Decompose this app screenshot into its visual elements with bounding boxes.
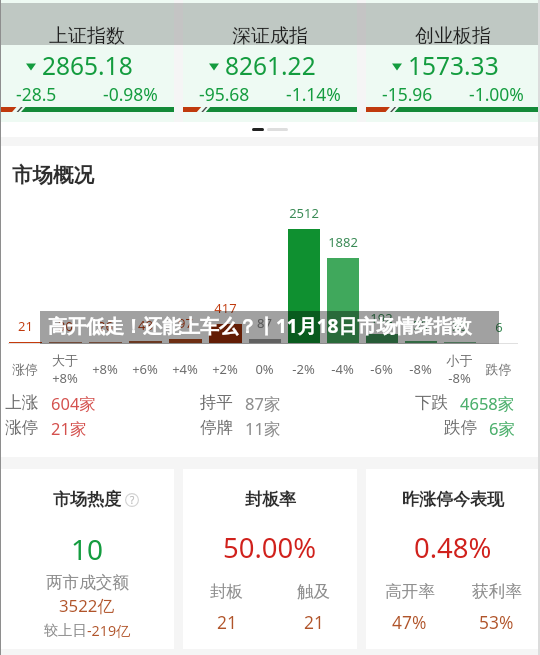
staticText: 跌停 — [479, 361, 518, 377]
staticText: 604家 — [51, 392, 96, 415]
staticText: 较上日 — [44, 621, 87, 639]
staticText: 4658家 — [460, 392, 515, 415]
staticText: -4% — [323, 360, 362, 378]
button[interactable]: 上证指数 — [0, 0, 174, 122]
staticText: -219亿 — [87, 621, 131, 641]
staticText: 26 — [98, 317, 113, 335]
staticText: 87家 — [245, 392, 281, 415]
staticText: 跌停 — [444, 417, 477, 438]
staticText: 0.48% — [414, 529, 492, 566]
button[interactable]: 说明 — [125, 493, 139, 507]
staticText: 触及 — [297, 581, 331, 602]
staticText: +4% — [165, 360, 205, 378]
staticText: 21 — [217, 610, 237, 634]
staticText: 3522亿 — [59, 594, 115, 617]
staticText: 50.00% — [223, 529, 317, 566]
staticText: 192 — [370, 309, 393, 327]
staticText: -8% — [401, 360, 440, 378]
staticText: 10 — [71, 530, 104, 568]
staticText: -1.14% — [286, 82, 341, 106]
staticText: 1882 — [328, 233, 358, 251]
staticText: -0.98% — [103, 82, 158, 106]
button[interactable]: 深证成指 — [183, 0, 357, 122]
staticText: 小于 -8% — [440, 352, 479, 386]
staticText: 封板 — [210, 581, 244, 602]
staticText: 下跌 — [415, 392, 448, 413]
staticText: 6 — [495, 318, 503, 336]
staticText: 55 — [413, 316, 428, 334]
staticText: 市场概况 — [12, 162, 94, 188]
button[interactable]: 创业板指 — [366, 0, 540, 122]
staticText: 30 — [452, 317, 467, 335]
button[interactable]: 昨涨停今表现 — [366, 469, 540, 649]
staticText: 97 — [178, 314, 193, 332]
staticText: 8261.22 — [225, 49, 316, 82]
staticText: 21 — [304, 610, 324, 634]
staticText: 停牌 — [200, 417, 233, 438]
staticText: 上涨 — [5, 392, 38, 413]
staticText: 创业板指 — [415, 24, 491, 48]
staticText: ? — [130, 493, 135, 507]
staticText: 417 — [214, 299, 237, 317]
staticText: -95.68 — [199, 82, 250, 106]
staticText: 2512 — [289, 204, 319, 222]
staticText: 高开低走！还能上车么？丨11月18日市场情绪指数 — [48, 313, 472, 339]
staticText: 两市成交额 — [46, 572, 129, 593]
staticText: 21家 — [51, 417, 87, 440]
staticText: 大于 +8% — [45, 352, 85, 386]
staticText: 涨停 — [5, 361, 45, 377]
staticText: 47% — [392, 610, 427, 634]
staticText: 6家 — [489, 417, 515, 440]
staticText: 持平 — [200, 392, 233, 413]
staticText: 封板率 — [245, 489, 296, 510]
staticText: 获利率 — [472, 581, 522, 602]
staticText: 11家 — [245, 417, 281, 440]
staticText: +8% — [85, 360, 125, 378]
staticText: 2865.18 — [42, 49, 133, 82]
staticText: -15.96 — [382, 82, 433, 106]
staticText: +6% — [125, 360, 165, 378]
staticText: -1.00% — [469, 82, 524, 106]
staticText: +2% — [205, 360, 245, 378]
staticText: 市场热度 — [53, 489, 121, 510]
staticText: 昨涨停今表现 — [402, 489, 504, 510]
staticText: 1573.33 — [408, 49, 499, 82]
staticText: 深证成指 — [232, 24, 308, 48]
staticText: -6% — [362, 360, 401, 378]
staticText: 高开率 — [385, 581, 435, 602]
button[interactable]: 市场热度 — [0, 469, 174, 649]
staticText: 涨停 — [5, 417, 38, 438]
staticText: 0% — [245, 360, 284, 378]
staticText: 21 — [18, 317, 33, 335]
staticText: -28.5 — [16, 82, 57, 106]
staticText: 53% — [479, 610, 514, 634]
staticText: 上证指数 — [49, 24, 125, 48]
button[interactable]: 封板率 — [183, 469, 357, 649]
staticText: -2% — [284, 360, 323, 378]
staticText: 48 — [138, 316, 153, 334]
staticText: 30 — [58, 317, 73, 335]
staticText: 87 — [257, 314, 272, 332]
